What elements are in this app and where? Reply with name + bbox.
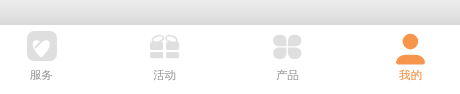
button[interactable]: 产品 — [226, 25, 349, 82]
staticText: 服务 — [30, 68, 53, 82]
other: 服务 — [27, 31, 57, 65]
staticText: 活动 — [153, 68, 176, 82]
button[interactable]: 服务 — [0, 25, 103, 82]
button[interactable]: 活动 — [103, 25, 226, 82]
staticText: 我的 — [399, 68, 422, 82]
staticText: 产品 — [276, 68, 299, 82]
button[interactable]: 我的 — [349, 25, 460, 82]
